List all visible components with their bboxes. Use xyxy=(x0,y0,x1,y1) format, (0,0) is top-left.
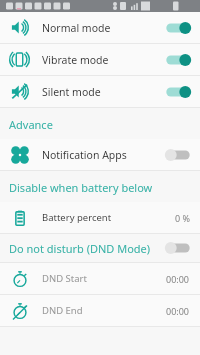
staticText: Do not disturb (DND Mode) xyxy=(9,241,163,256)
button[interactable]: Toggle off xyxy=(163,146,193,164)
staticText: Vibrate mode xyxy=(42,53,163,67)
button[interactable]: Toggle on xyxy=(163,51,193,69)
button[interactable]: DND End xyxy=(0,295,200,326)
staticText: 00:00 xyxy=(166,273,190,285)
button[interactable]: DND Start xyxy=(0,263,200,294)
staticText: DND End xyxy=(42,304,166,317)
button[interactable]: Toggle on xyxy=(163,83,193,101)
button[interactable]: Do not disturb (DND Mode) xyxy=(0,234,200,262)
staticText: DND Start xyxy=(42,272,166,285)
button[interactable]: Battery percent xyxy=(0,202,200,233)
staticText: Notification Apps xyxy=(42,148,163,162)
staticText: 0 % xyxy=(175,212,190,224)
staticText: Advance xyxy=(9,117,53,132)
button[interactable]: Normal mode xyxy=(0,12,200,43)
staticText: Silent mode xyxy=(42,85,163,99)
staticText: Disable when battery below xyxy=(9,180,153,195)
staticText: Battery percent xyxy=(42,211,175,224)
button[interactable]: Notification Apps xyxy=(0,139,200,170)
button[interactable]: Silent mode xyxy=(0,76,200,107)
staticText: Normal mode xyxy=(42,21,163,35)
button[interactable]: Toggle off xyxy=(163,239,193,257)
button[interactable]: Toggle on xyxy=(163,19,193,37)
staticText: 00:00 xyxy=(166,305,190,317)
button[interactable]: Vibrate mode xyxy=(0,44,200,75)
